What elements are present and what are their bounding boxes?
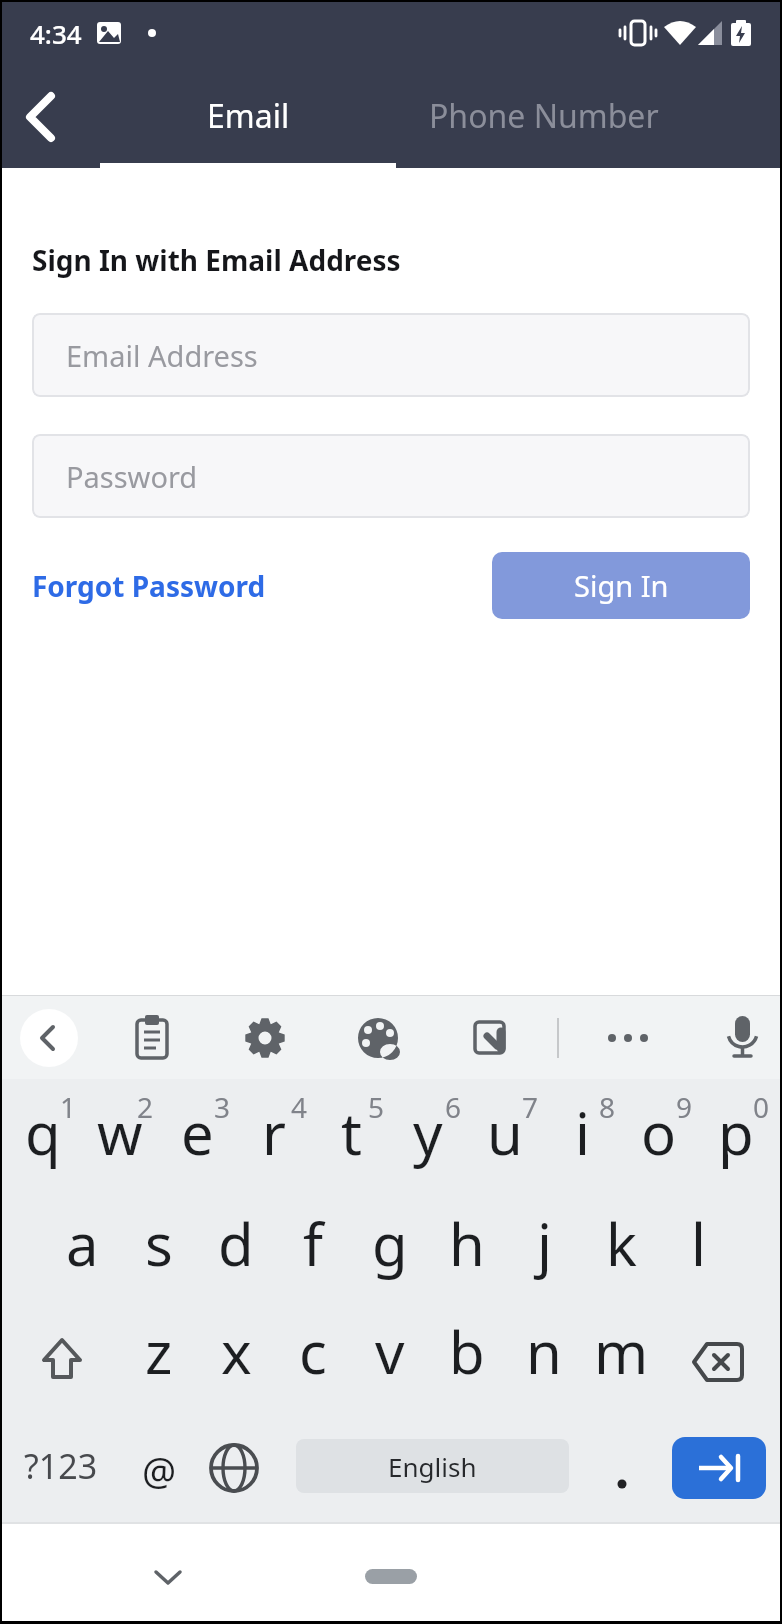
staticText: Phone Number — [429, 94, 659, 138]
button[interactable]: f — [223, 1203, 403, 1283]
staticText: Sign In — [574, 566, 669, 605]
staticText: 6 — [445, 1088, 462, 1126]
staticText: g — [372, 1204, 408, 1283]
staticText: e — [181, 1093, 214, 1172]
staticText: b — [449, 1312, 485, 1391]
staticText: d — [218, 1204, 254, 1283]
staticText: Forgot Password — [32, 567, 266, 605]
button[interactable] — [20, 1009, 78, 1067]
button[interactable]: r — [184, 1092, 364, 1172]
button[interactable]: m — [531, 1311, 711, 1391]
staticText: 4:34 — [30, 16, 82, 51]
button[interactable]: Forgot Password — [32, 546, 266, 626]
button[interactable]: t — [261, 1092, 441, 1172]
staticText: Password — [66, 457, 198, 496]
staticText: 4 — [291, 1088, 308, 1126]
button[interactable]: Phone Number — [396, 66, 692, 166]
staticText: 9 — [676, 1088, 693, 1126]
staticText: t — [341, 1093, 362, 1172]
button[interactable] — [672, 1437, 766, 1499]
button[interactable] — [233, 1005, 297, 1069]
button[interactable]: Password — [32, 434, 750, 518]
button[interactable]: e — [107, 1092, 287, 1172]
button[interactable]: v — [300, 1311, 480, 1391]
staticText: English — [388, 1449, 477, 1484]
staticText: 1 — [60, 1088, 77, 1126]
staticText: q — [25, 1093, 61, 1172]
button[interactable]: g — [300, 1203, 480, 1283]
staticText: c — [299, 1312, 327, 1391]
staticText: f — [303, 1204, 323, 1283]
staticText: j — [537, 1204, 552, 1283]
staticText: u — [487, 1093, 523, 1172]
button[interactable]: k — [531, 1203, 711, 1283]
button[interactable]: x — [146, 1311, 326, 1391]
button[interactable]: d — [146, 1203, 326, 1283]
button[interactable]: o — [569, 1092, 749, 1172]
button[interactable] — [120, 1005, 184, 1069]
button[interactable] — [140, 1556, 196, 1600]
button[interactable]: ?123 — [0, 1426, 151, 1506]
staticText: v — [375, 1312, 405, 1391]
button[interactable] — [458, 1005, 522, 1069]
button[interactable]: w — [30, 1092, 210, 1172]
staticText: a — [66, 1204, 99, 1283]
button[interactable] — [682, 1326, 754, 1394]
button[interactable] — [592, 1444, 652, 1504]
staticText: i — [575, 1093, 590, 1172]
button[interactable]: y — [338, 1092, 518, 1172]
button[interactable] — [206, 1434, 266, 1494]
button[interactable] — [8, 85, 72, 149]
button[interactable]: i — [492, 1092, 672, 1172]
staticText: 3 — [214, 1088, 231, 1126]
staticText: w — [97, 1093, 143, 1172]
button[interactable]: z — [69, 1311, 249, 1391]
button[interactable]: English — [296, 1439, 569, 1493]
button[interactable]: Sign In — [492, 552, 750, 619]
staticText: n — [526, 1312, 562, 1391]
staticText: Email Address — [66, 336, 258, 375]
button[interactable] — [24, 1326, 96, 1394]
staticText: k — [606, 1204, 637, 1283]
button[interactable]: Email Address — [32, 313, 750, 397]
staticText: l — [691, 1204, 706, 1283]
button[interactable]: a — [0, 1203, 172, 1283]
staticText: 5 — [368, 1088, 385, 1126]
button[interactable]: q — [0, 1092, 133, 1172]
staticText: 2 — [137, 1088, 154, 1126]
staticText: m — [594, 1312, 649, 1391]
button[interactable] — [346, 1005, 410, 1069]
staticText: Sign In with Email Address — [32, 241, 401, 279]
button[interactable]: @ — [69, 1430, 249, 1510]
button[interactable]: s — [69, 1203, 249, 1283]
button[interactable]: p — [646, 1092, 782, 1172]
staticText: Email — [207, 94, 290, 138]
staticText: 8 — [599, 1088, 616, 1126]
staticText: z — [145, 1312, 173, 1391]
staticText: y — [413, 1093, 443, 1172]
staticText: h — [449, 1204, 485, 1283]
staticText: 7 — [522, 1088, 539, 1126]
button[interactable] — [596, 1005, 660, 1069]
button[interactable]: b — [377, 1311, 557, 1391]
staticText: r — [262, 1093, 286, 1172]
button[interactable]: u — [415, 1092, 595, 1172]
staticText: x — [221, 1312, 252, 1391]
staticText: s — [145, 1204, 173, 1283]
button[interactable]: Email — [100, 66, 396, 166]
button[interactable]: h — [377, 1203, 557, 1283]
button[interactable]: j — [454, 1203, 634, 1283]
staticText: 0 — [753, 1088, 770, 1126]
button[interactable]: c — [223, 1311, 403, 1391]
staticText: o — [641, 1093, 677, 1172]
button[interactable]: n — [454, 1311, 634, 1391]
button[interactable]: l — [608, 1203, 782, 1283]
staticText: ?123 — [24, 1443, 98, 1489]
button[interactable] — [710, 1005, 774, 1069]
staticText: @ — [142, 1444, 177, 1496]
staticText: p — [718, 1093, 754, 1172]
